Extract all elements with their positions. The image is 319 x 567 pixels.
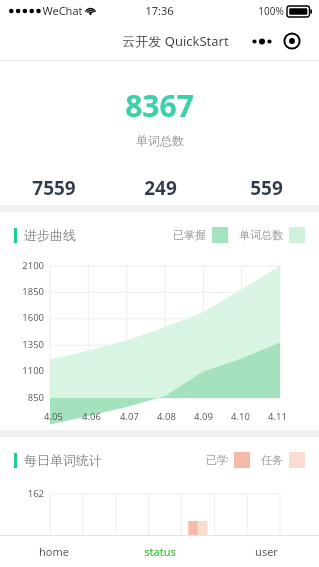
staticText: 100% [258,4,284,18]
staticText: 850 [0,391,44,404]
staticText: 单词总数 [136,133,184,148]
staticText: WeChat [42,3,83,18]
staticText: 单词总数 [239,228,283,242]
staticText: 2100 [0,259,44,272]
button[interactable]: 7559 [0,173,107,205]
staticText: 4.06 [82,410,101,423]
staticText: 17:36 [145,3,174,18]
staticText: 每日单词统计 [24,452,102,468]
staticText: 1600 [0,311,44,324]
staticText: 7559 [32,175,76,201]
staticText: home [39,544,69,559]
staticText: 4.08 [157,410,176,423]
staticText: status [144,544,176,559]
staticText: 已学 [206,453,228,467]
staticText: user [255,544,278,559]
button[interactable]: home [0,536,107,567]
staticText: 8367 [125,85,194,126]
button[interactable]: 559 [213,173,319,205]
staticText: 4.09 [194,410,213,423]
staticText: 已掌握 [173,228,206,242]
button[interactable]: user [213,536,319,567]
button[interactable]: status [107,536,213,567]
staticText: 162 [0,487,44,500]
button[interactable]: 249 [107,173,213,205]
staticText: 任务 [261,453,283,467]
staticText: 1100 [0,364,44,377]
staticText: 4.05 [44,410,63,423]
staticText: 249 [144,175,177,201]
staticText: 4.11 [268,410,287,423]
staticText: 1850 [0,285,44,298]
staticText: 559 [250,175,283,201]
staticText: 云开发 QuickStart [122,32,229,50]
staticText: 4.07 [120,410,139,423]
button[interactable]: Menu and close mini program [240,27,312,55]
staticText: 1350 [0,338,44,351]
staticText: 进步曲线 [24,227,76,243]
staticText: 4.10 [231,410,250,423]
